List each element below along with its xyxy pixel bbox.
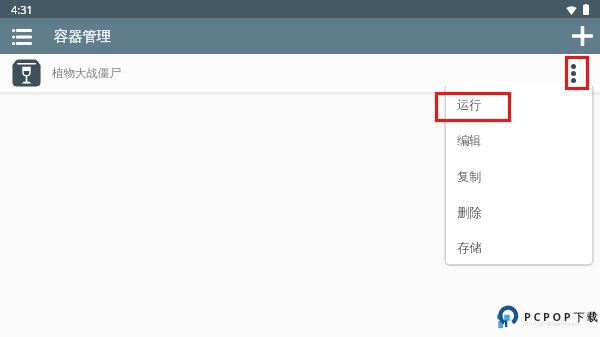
- staticText: 植物大战僵尸: [52, 66, 121, 80]
- staticText: 存储: [457, 240, 482, 255]
- button[interactable]: 删除: [446, 194, 592, 230]
- button[interactable]: Add: [564, 18, 600, 54]
- staticText: 4:31: [11, 2, 33, 17]
- button[interactable]: 植物大战僵尸: [0, 54, 600, 91]
- staticText: 编辑: [457, 133, 482, 148]
- button[interactable]: 运行: [446, 86, 592, 122]
- staticText: 删除: [457, 205, 482, 220]
- button[interactable]: More options: [562, 56, 586, 90]
- staticText: PCPOP Download: [525, 321, 579, 328]
- staticText: 容器管理: [54, 27, 111, 45]
- button[interactable]: 存储: [446, 230, 592, 264]
- staticText: 运行: [457, 97, 482, 112]
- button[interactable]: 复制: [446, 158, 592, 194]
- staticText: 复制: [457, 169, 482, 184]
- staticText: PCPOP下载: [524, 309, 600, 324]
- button[interactable]: 编辑: [446, 122, 592, 158]
- button[interactable]: Navigation menu: [4, 23, 40, 51]
